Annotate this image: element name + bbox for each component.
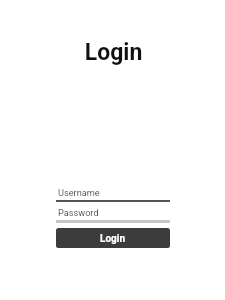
staticText: Login bbox=[100, 233, 126, 245]
staticText: Password bbox=[58, 207, 99, 218]
button[interactable]: Password bbox=[56, 207, 170, 223]
button[interactable]: Login bbox=[56, 228, 170, 248]
staticText: Login bbox=[1, 39, 225, 66]
button[interactable]: Username bbox=[56, 187, 170, 202]
staticText: Username bbox=[58, 187, 100, 198]
